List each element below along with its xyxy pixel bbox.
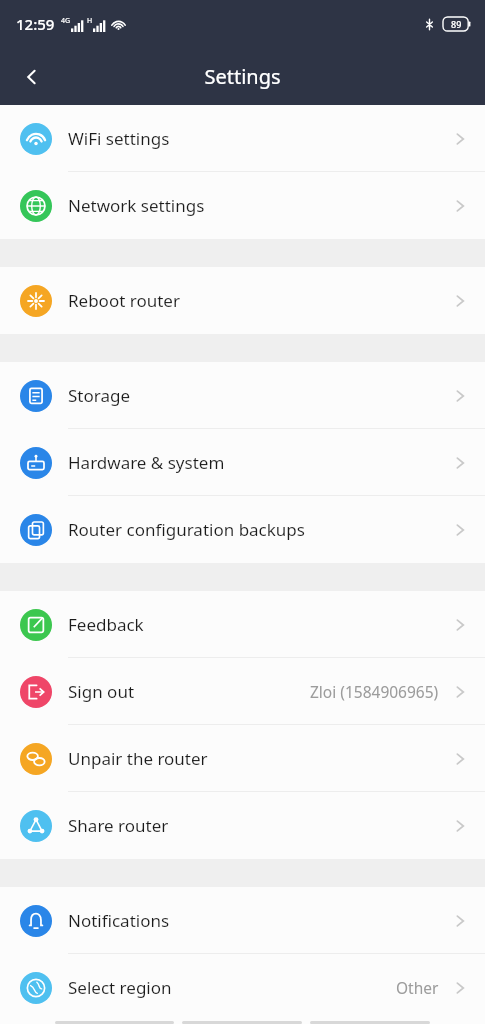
staticText: Select region xyxy=(68,976,172,999)
button[interactable]: Select region xyxy=(0,954,485,1021)
staticText: Reboot router xyxy=(68,289,180,312)
staticText: Feedback xyxy=(68,613,144,636)
staticText: Hardware & system xyxy=(68,451,225,474)
button[interactable]: Storage xyxy=(0,362,485,429)
staticText: Other xyxy=(396,977,439,998)
button[interactable]: Notifications xyxy=(0,887,485,954)
button[interactable]: Back xyxy=(10,55,54,99)
staticText: Unpair the router xyxy=(68,747,208,770)
staticText: Notifications xyxy=(68,909,170,932)
staticText: Network settings xyxy=(68,194,205,217)
staticText: Storage xyxy=(68,384,131,407)
staticText: 89 xyxy=(451,18,462,30)
staticText: Router configuration backups xyxy=(68,518,305,541)
staticText: Share router xyxy=(68,814,169,837)
staticText: H xyxy=(87,16,93,26)
staticText: 4G xyxy=(61,16,71,26)
button[interactable]: Reboot router xyxy=(0,267,485,334)
button[interactable]: Feedback xyxy=(0,591,485,658)
staticText: Zloi (1584906965) xyxy=(310,681,439,702)
button[interactable]: Hardware & system xyxy=(0,429,485,496)
button[interactable]: WiFi settings xyxy=(0,105,485,172)
button[interactable]: Router configuration backups xyxy=(0,496,485,563)
staticText: Sign out xyxy=(68,680,135,703)
staticText: 12:59 xyxy=(16,14,55,34)
button[interactable]: Unpair the router xyxy=(0,725,485,792)
button[interactable]: Sign out xyxy=(0,658,485,725)
button[interactable]: Share router xyxy=(0,792,485,859)
button[interactable]: Network settings xyxy=(0,172,485,239)
staticText: WiFi settings xyxy=(68,127,170,150)
staticText: Settings xyxy=(204,63,281,90)
